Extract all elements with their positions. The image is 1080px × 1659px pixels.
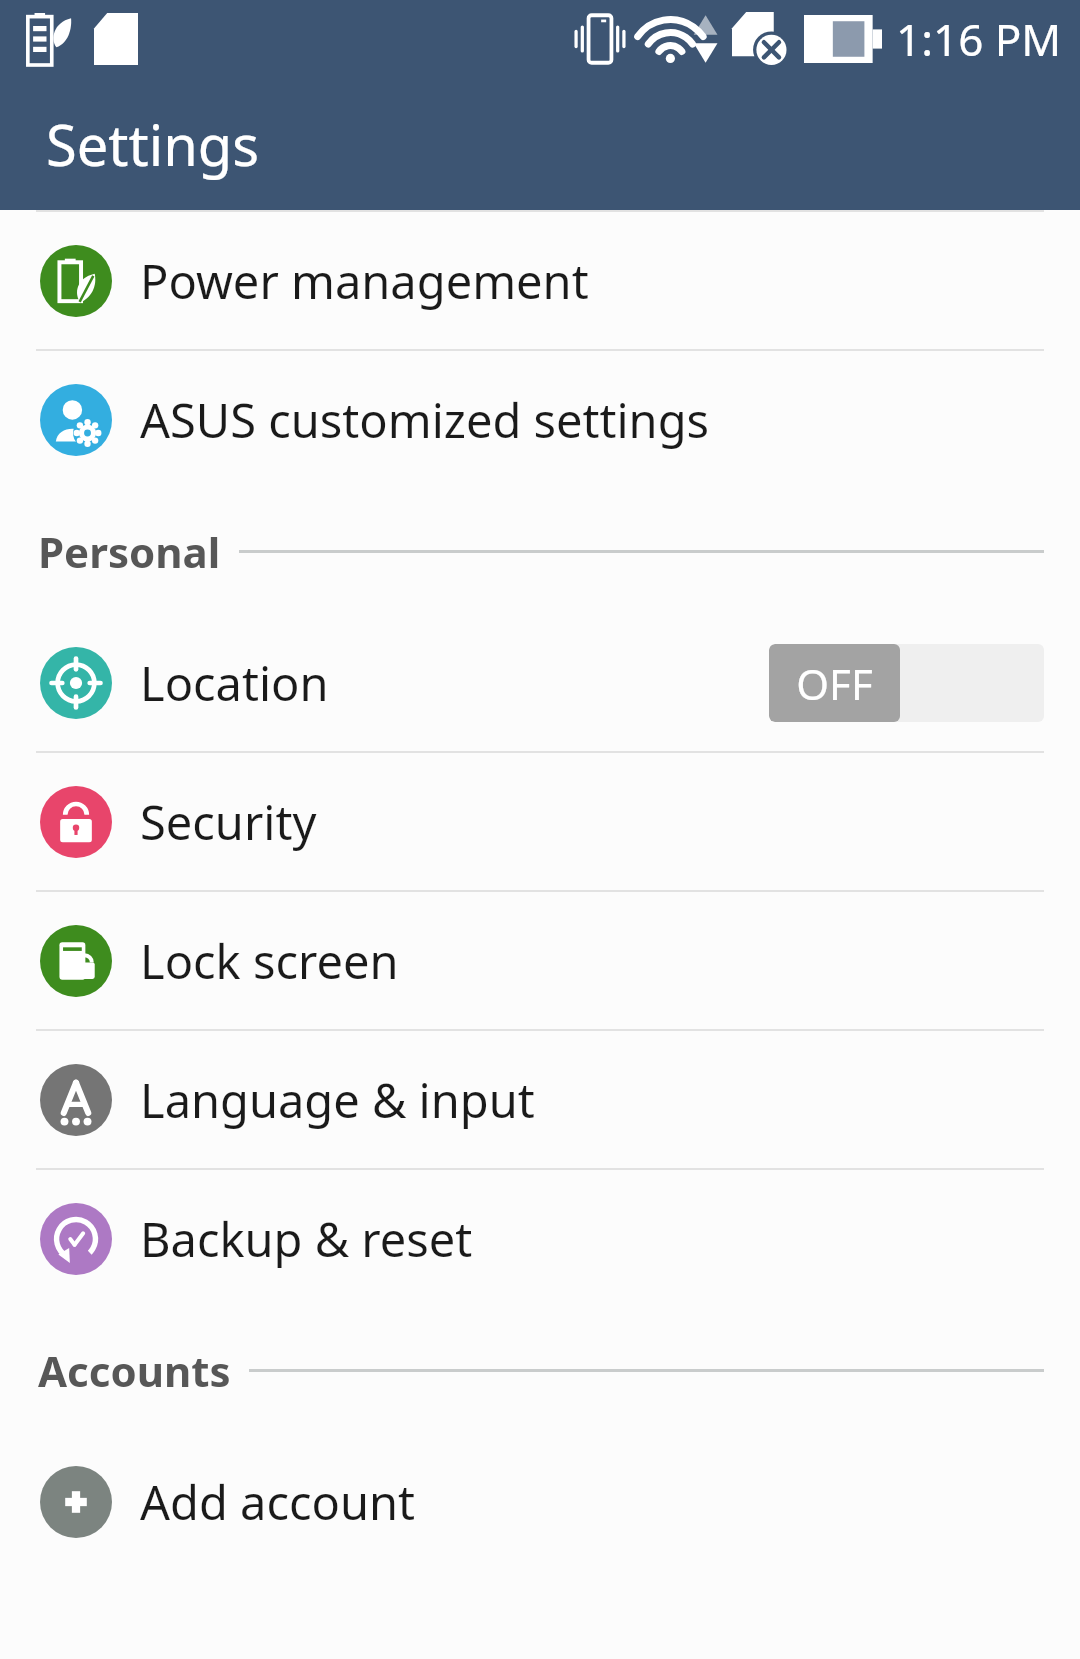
staticText: ASUS customized settings [140,388,1044,452]
staticText: Settings [46,106,260,182]
staticText: 1:16 PM [896,9,1062,69]
button[interactable]: Security [0,753,1080,890]
button[interactable]: Backup & reset [0,1170,1080,1307]
staticText: Backup & reset [140,1207,1044,1271]
staticText: OFF [796,655,873,712]
staticText: Power management [140,249,1044,313]
staticText: Location [140,651,769,715]
button[interactable]: Language & input [0,1031,1080,1168]
button[interactable]: Lock screen [0,892,1080,1029]
button[interactable]: ASUS customized settings [0,351,1080,488]
staticText: Security [140,790,1044,854]
button[interactable]: Location [0,614,1080,751]
staticText: Accounts [38,1342,231,1399]
button[interactable]: Location off [769,644,1044,722]
button[interactable]: Add account [0,1433,1080,1570]
staticText: Lock screen [140,929,1044,993]
staticText: Add account [140,1470,1044,1534]
button[interactable]: Power management [0,212,1080,349]
staticText: Personal [38,523,221,580]
staticText: Language & input [140,1068,1044,1132]
